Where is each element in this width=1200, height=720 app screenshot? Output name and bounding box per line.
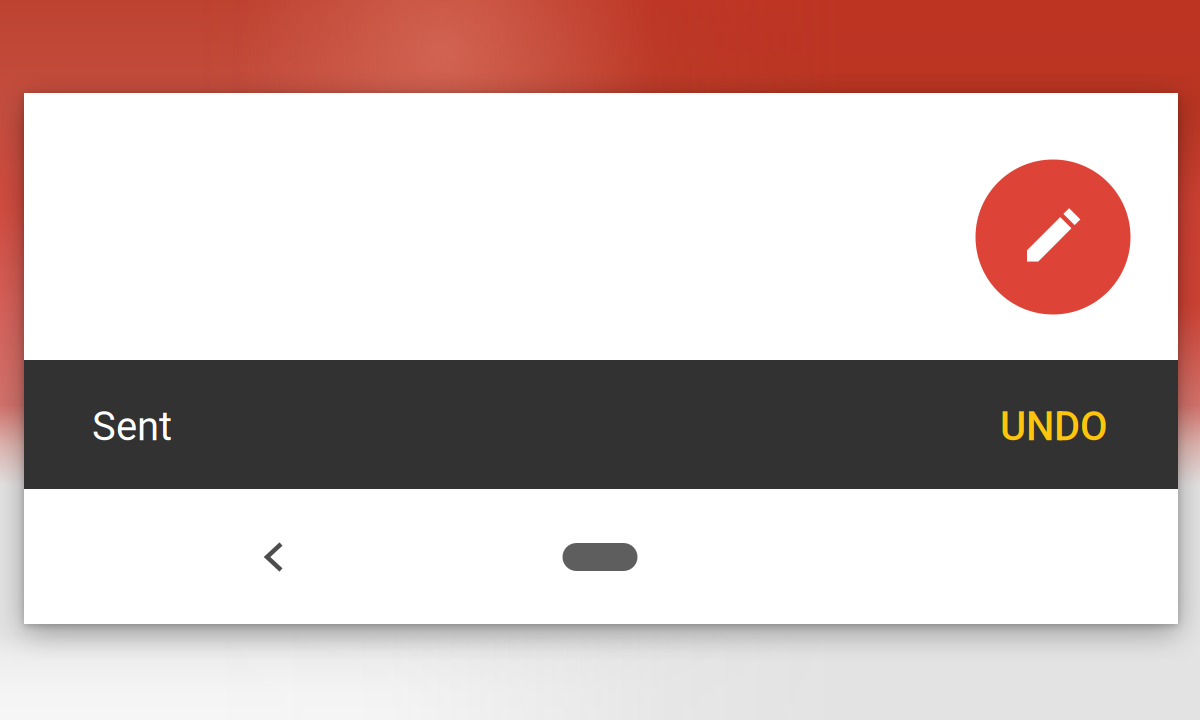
- button[interactable]: Compose: [975, 159, 1130, 314]
- button[interactable]: Back: [225, 509, 321, 605]
- button[interactable]: UNDO: [998, 389, 1110, 464]
- staticText: UNDO: [1000, 403, 1108, 450]
- button[interactable]: Home: [540, 517, 660, 597]
- staticText: Sent: [92, 403, 172, 450]
